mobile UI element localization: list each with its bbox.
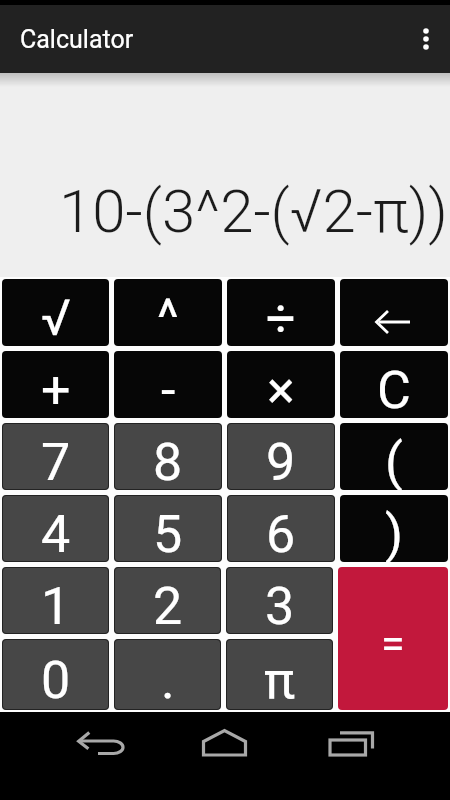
button[interactable]: = (338, 567, 448, 710)
staticText: 8 (153, 432, 183, 490)
staticText: 4 (41, 504, 71, 562)
button[interactable]: . (114, 639, 221, 710)
staticText: π (264, 650, 296, 710)
button[interactable]: 7 (2, 423, 109, 490)
staticText: 5 (153, 504, 183, 562)
staticText: = (381, 618, 405, 668)
button[interactable]: ) (340, 495, 448, 562)
button[interactable]: C (340, 351, 448, 418)
button[interactable]: √ (2, 279, 109, 346)
staticText: ÷ (266, 288, 296, 346)
staticText: 10-(3^2-(√2-π)) (59, 176, 448, 246)
staticText: 9 (266, 432, 296, 490)
staticText: × (267, 360, 295, 418)
staticText: C (377, 360, 411, 418)
button[interactable]: ( (340, 423, 448, 490)
staticText: √ (41, 289, 71, 346)
button[interactable]: 4 (2, 495, 109, 562)
button[interactable]: 6 (227, 495, 335, 562)
staticText: 7 (41, 432, 71, 490)
button[interactable]: - (114, 351, 222, 418)
staticText: 3 (265, 576, 295, 634)
button[interactable]: 9 (227, 423, 335, 490)
staticText: 6 (266, 504, 296, 562)
button[interactable]: 3 (226, 567, 333, 634)
button[interactable]: ^ (114, 279, 222, 346)
staticText: Calculator (20, 25, 134, 54)
button[interactable] (402, 5, 450, 73)
staticText: . (161, 650, 175, 710)
button[interactable]: ÷ (227, 279, 335, 346)
button[interactable]: 8 (114, 423, 222, 490)
button[interactable]: 0 (2, 639, 109, 710)
staticText: ( (385, 432, 403, 490)
staticText: 2 (153, 576, 183, 634)
staticText: 0 (41, 650, 71, 710)
button[interactable]: + (2, 351, 109, 418)
staticText: + (41, 360, 71, 418)
button[interactable]: 5 (114, 495, 222, 562)
button[interactable]: × (227, 351, 335, 418)
button[interactable]: 1 (2, 567, 109, 634)
button[interactable]: π (226, 639, 333, 710)
button[interactable] (340, 279, 448, 346)
staticText: - (161, 360, 176, 418)
staticText: ^ (157, 288, 179, 346)
staticText: ) (385, 504, 404, 562)
button[interactable]: 2 (114, 567, 221, 634)
staticText: 1 (41, 576, 71, 634)
